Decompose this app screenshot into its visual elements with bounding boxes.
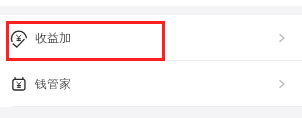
button[interactable]: 收益加: [0, 15, 302, 60]
staticText: 钱管家: [35, 76, 71, 91]
staticText: 收益加: [35, 30, 71, 45]
button[interactable]: 钱管家: [0, 61, 302, 106]
